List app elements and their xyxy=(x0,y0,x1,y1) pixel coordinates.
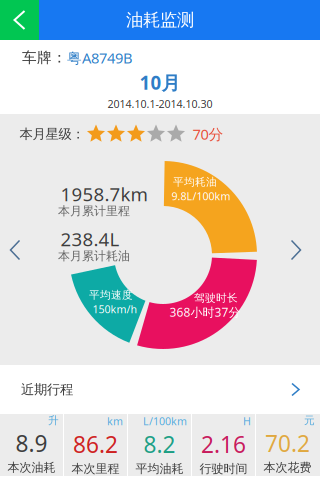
button[interactable]: Back xyxy=(0,0,39,40)
staticText: 8.2 xyxy=(143,429,175,459)
staticText: 2014.10.1-2014.10.30 xyxy=(107,97,212,111)
staticText: 86.2 xyxy=(73,429,118,459)
staticText: 油耗监测 xyxy=(126,9,194,31)
staticText: 元 xyxy=(304,414,315,427)
staticText: 1958.7km xyxy=(60,182,147,206)
staticText: 本月累计耗油 xyxy=(58,249,130,263)
staticText: 本次里程 xyxy=(71,461,119,476)
button[interactable]: 近期行程 xyxy=(0,365,320,414)
staticText: 本次花费 xyxy=(263,460,311,475)
staticText: 2.16 xyxy=(201,429,246,459)
staticText: 车牌： xyxy=(22,49,67,67)
staticText: 70分 xyxy=(192,124,223,144)
staticText: 238.4L xyxy=(60,227,119,251)
staticText: H xyxy=(243,414,251,428)
staticText: 平均速度 xyxy=(89,288,133,301)
staticText: 70.2 xyxy=(265,428,310,458)
staticText: 本次油耗 xyxy=(7,460,55,475)
staticText: 368小时37分 xyxy=(169,304,240,320)
staticText: 10月 xyxy=(139,70,180,95)
staticText: 150km/h xyxy=(92,302,137,316)
staticText: 行驶时间 xyxy=(199,461,247,476)
staticText: 粤A8749B xyxy=(67,48,133,67)
staticText: km xyxy=(107,414,123,428)
button[interactable]: Previous month xyxy=(0,230,29,269)
staticText: 平均油耗 xyxy=(135,461,183,476)
staticText: 8.9 xyxy=(15,428,47,458)
staticText: 本月累计里程 xyxy=(58,204,130,218)
staticText: 近期行程 xyxy=(21,381,73,398)
staticText: L/100km xyxy=(143,414,187,428)
staticText: 驾驶时长 xyxy=(194,291,238,304)
staticText: 9.8L/100km xyxy=(171,189,230,203)
staticText: 升 xyxy=(48,414,59,427)
staticText: 本月星级： xyxy=(19,126,84,142)
button[interactable]: Next month xyxy=(281,230,310,269)
staticText: 平均耗油 xyxy=(173,175,217,188)
